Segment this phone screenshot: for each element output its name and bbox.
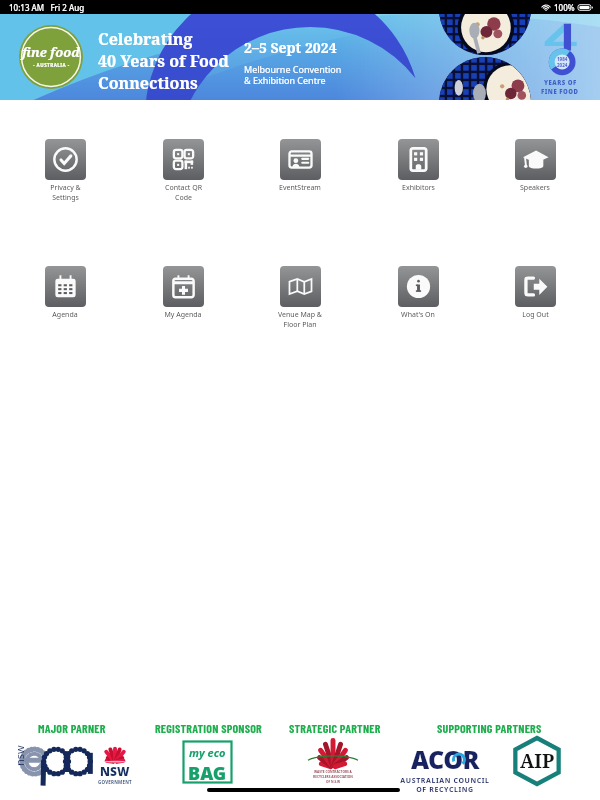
staticText: BAG [188,761,227,784]
other: Log Out [515,266,556,307]
staticText: AIP [520,748,555,774]
button[interactable]: Log Out [490,266,580,320]
button[interactable]: Exhibitors [373,139,463,193]
staticText: 1984 [557,56,568,62]
button[interactable]: Venue Map and Floor Plan [255,266,345,330]
staticText: Celebrating [98,28,193,50]
staticText: Contact QR Code [165,183,202,203]
other: Privacy and Settings [45,139,86,180]
staticText: fine food [22,43,80,61]
staticText: REGISTRATION SPONSOR [155,721,262,735]
staticText: - AUSTRALIA - [33,62,70,68]
other: Exhibitors [398,139,439,180]
staticText: EventStream [279,183,321,193]
staticText: YEARS OF [544,79,577,87]
staticText: 2–5 Sept 2024 [244,38,337,57]
button[interactable]: What's On [373,266,463,320]
staticText: STRATEGIC PARTNER [289,721,381,735]
staticText: GOVERNMENT [98,779,132,785]
staticText: Log Out [522,310,549,320]
button[interactable]: Contact QR Code [138,139,228,203]
staticText: Exhibitors [402,183,435,193]
staticText: Melbourne Convention & Exhibition Centre [244,63,342,87]
staticText: 10:13 AM Fri 2 Aug [9,2,85,13]
other: Venue Map and Floor Plan [280,266,321,307]
other: EventStream [280,139,321,180]
button[interactable]: EventStream [255,139,345,193]
staticText: nsw [12,745,24,766]
staticText: Connections [98,72,198,94]
staticText: Privacy & Settings [50,183,81,203]
other: My Agenda [163,266,204,307]
button[interactable]: Agenda [20,266,110,320]
staticText: AUSTRALIAN COUNCIL OF RECYCLING [400,776,490,794]
staticText: Agenda [52,310,78,320]
staticText: NSW [100,763,130,779]
staticText: FINE FOOD [541,88,579,96]
other: Agenda [45,266,86,307]
other: What's On [398,266,439,307]
staticText: my eco [189,745,226,760]
other: Contact QR Code [163,139,204,180]
staticText: What's On [401,310,435,320]
staticText: 2024 [557,62,568,68]
staticText: Speakers [520,183,550,193]
staticText: Venue Map & Floor Plan [278,310,322,330]
staticText: SUPPORTING PARTNERS [437,721,542,735]
staticText: WASTE CONTRACTORS & RECYCLERS ASSOCIATIO… [313,770,353,784]
staticText: 40 Years of Food [98,50,230,72]
other: Speakers [515,139,556,180]
button[interactable]: My Agenda [138,266,228,320]
staticText: 100% [554,2,575,13]
button[interactable]: Privacy and Settings [20,139,110,203]
button[interactable]: Speakers [490,139,580,193]
staticText: ACOR [411,742,479,776]
staticText: My Agenda [164,310,202,320]
staticText: MAJOR PARNER [38,721,106,735]
